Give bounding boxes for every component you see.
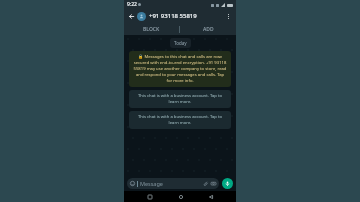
staticText: 🔒 Messages to this chat and calls are no…: [133, 54, 227, 84]
staticText: This chat is with a business account. Ta…: [133, 93, 227, 105]
button[interactable]: More options: [224, 12, 233, 21]
button[interactable]: Camera: [211, 181, 216, 186]
button[interactable]: Voice message: [222, 178, 233, 189]
staticText: ADD: [203, 26, 214, 33]
button[interactable]: Back: [206, 192, 215, 201]
button[interactable]: Message: [127, 178, 219, 189]
staticText: This chat is with a business account. Ta…: [133, 114, 227, 126]
button[interactable]: ADD: [180, 23, 236, 35]
button[interactable]: Attach: [203, 181, 208, 186]
button[interactable]: BLOCK: [124, 23, 179, 35]
button[interactable]: Home: [176, 192, 185, 201]
button[interactable]: 🔒 Messages to this chat and calls are no…: [129, 51, 231, 87]
button[interactable]: Back: [127, 12, 136, 21]
staticText: 9:22: [127, 1, 137, 8]
button[interactable]: This chat is with a business account. Ta…: [129, 111, 231, 129]
button[interactable]: This chat is with a business account. Ta…: [129, 90, 231, 108]
staticText: BLOCK: [143, 26, 160, 33]
staticText: Today: [174, 40, 187, 46]
button[interactable]: Recents: [145, 192, 154, 201]
staticText: +91 93118 55819: [149, 12, 224, 20]
staticText: Message: [140, 180, 203, 187]
button[interactable]: Contact photo: [137, 12, 146, 21]
